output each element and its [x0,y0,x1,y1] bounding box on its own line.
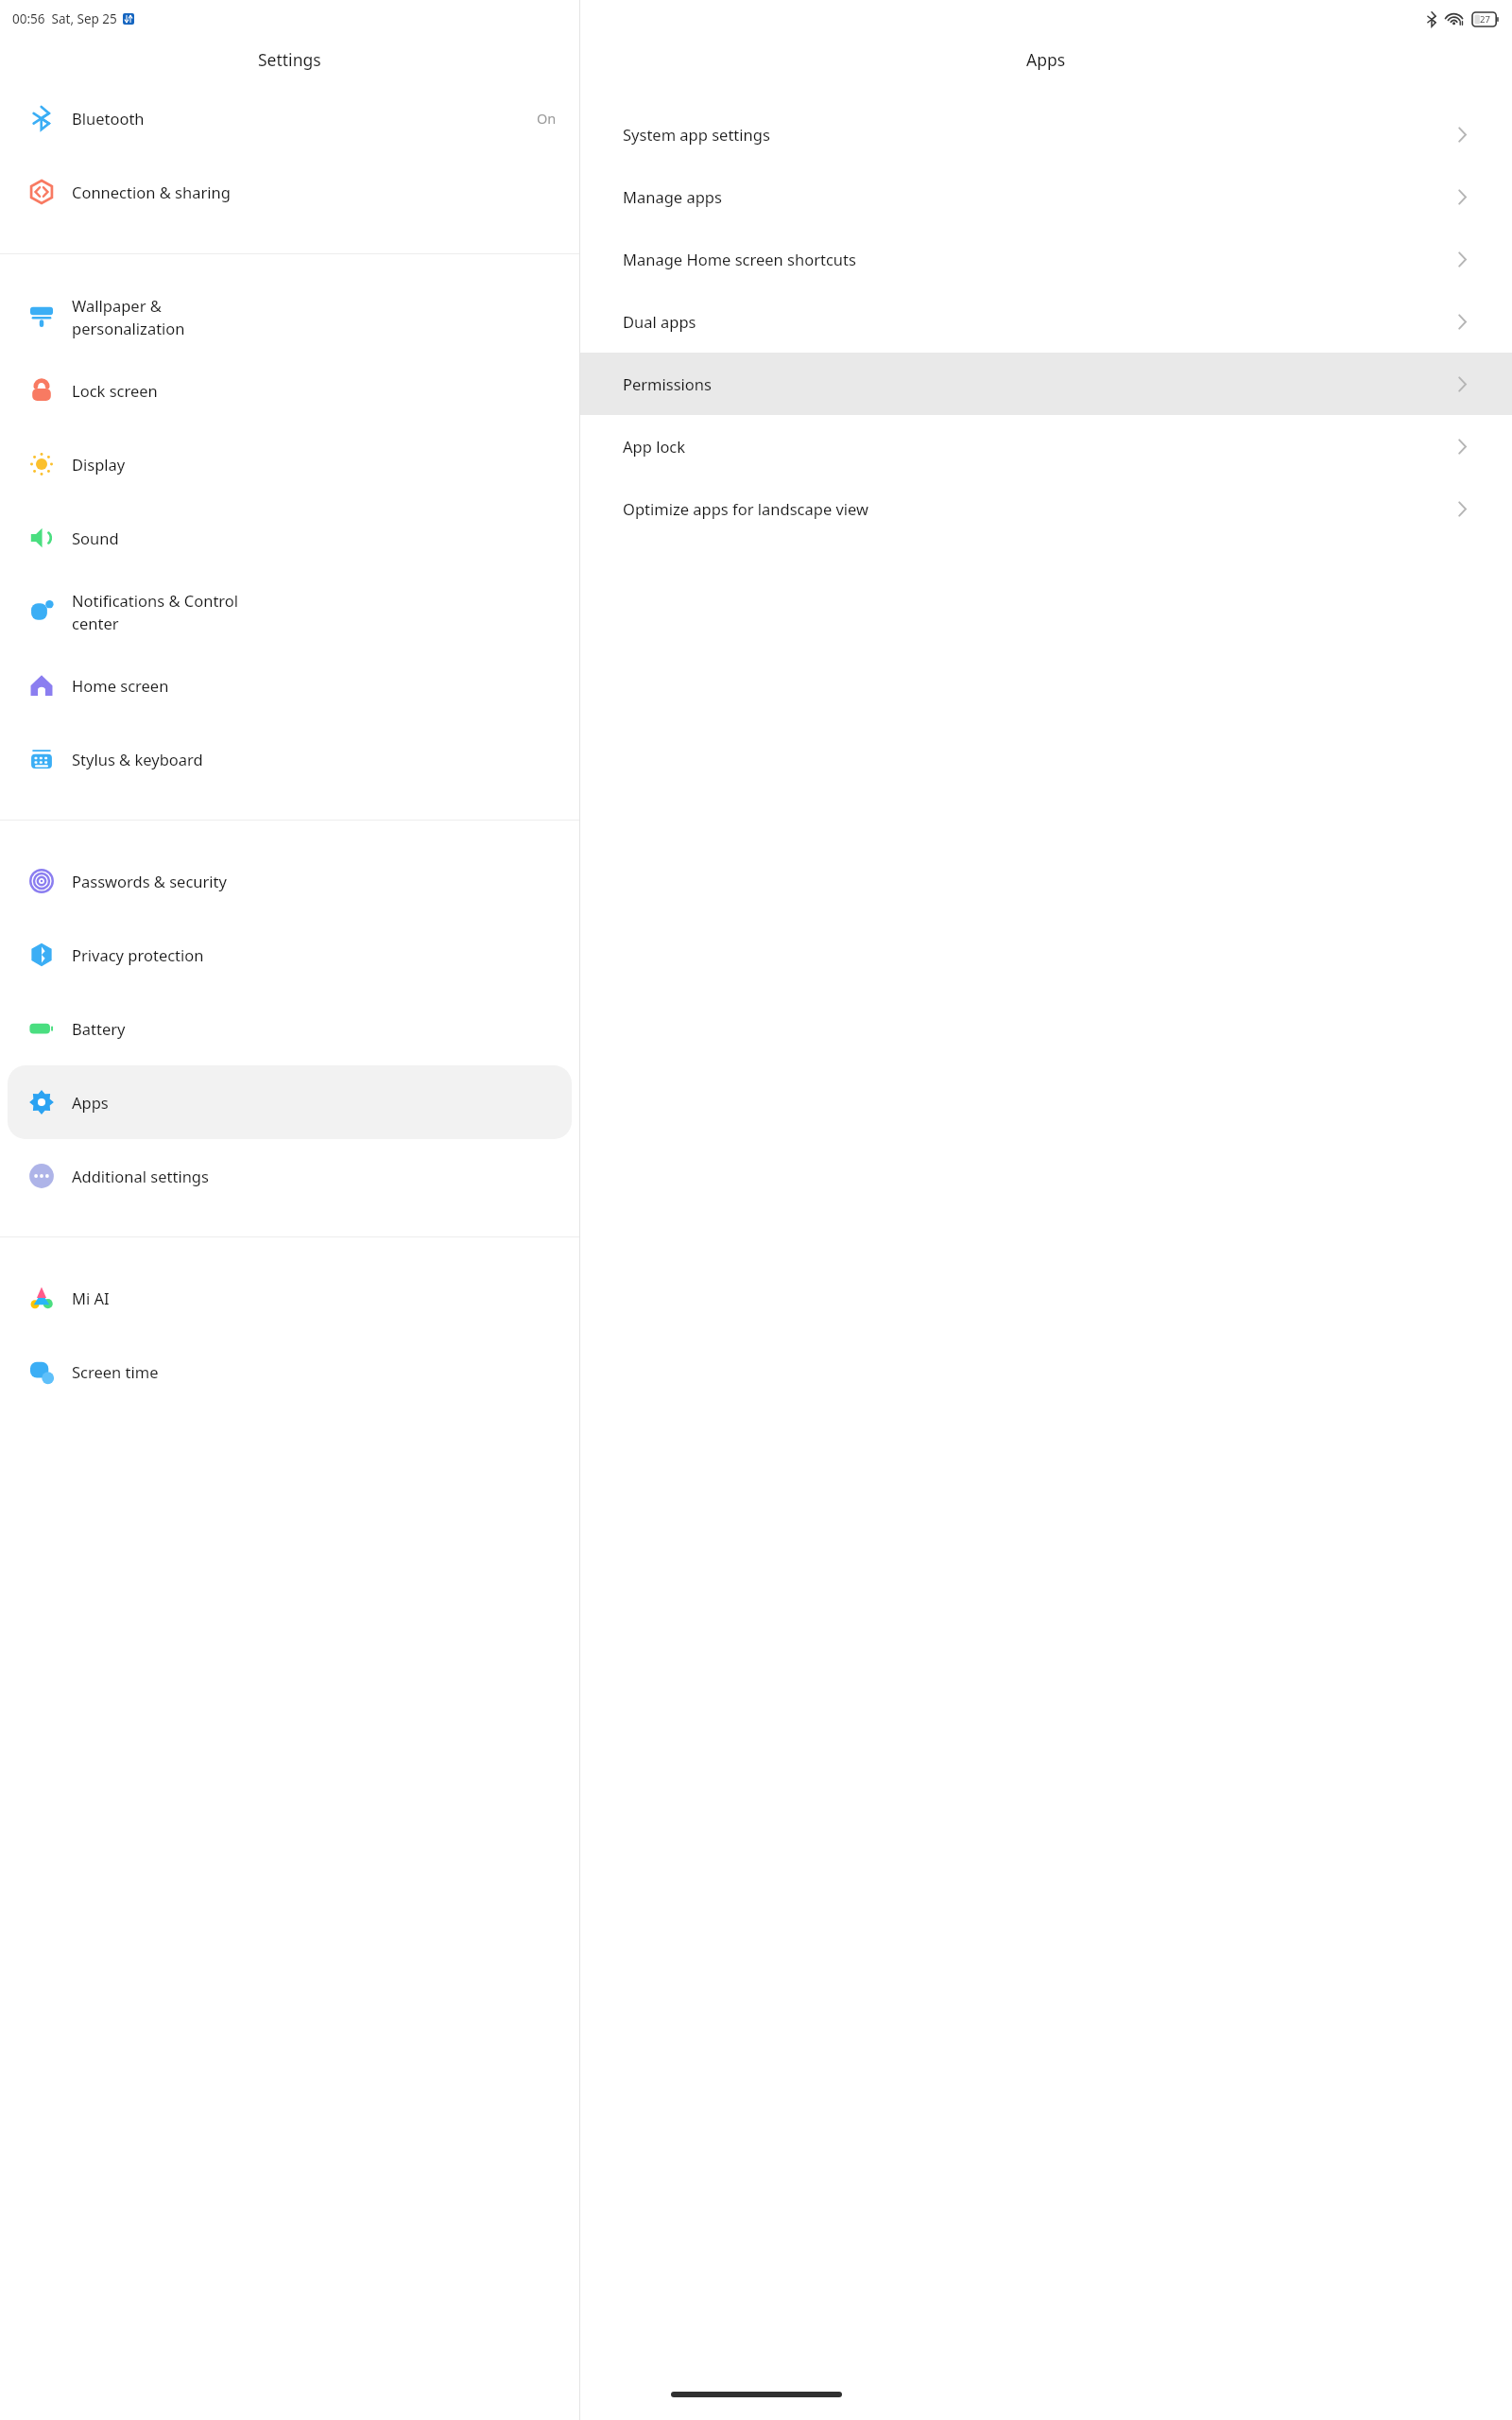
button[interactable]: Manage apps [580,165,1512,228]
other: Open Manage apps [1457,187,1468,207]
button[interactable]: Bluetooth [8,81,572,155]
button[interactable]: App lock [580,415,1512,477]
staticText: Permissions [623,373,1457,394]
staticText: Battery [72,1018,561,1039]
button[interactable]: Apps [8,1065,572,1139]
staticText: Optimize apps for landscape view [623,498,1457,519]
staticText: Stylus & keyboard [72,749,561,769]
staticText: 00:56 Sat, Sep 25 [12,10,117,27]
staticText: Dual apps [623,311,1457,332]
staticText: Connection & sharing [72,181,561,202]
staticText: App lock [623,436,1457,457]
staticText: Manage Home screen shortcuts [623,249,1457,269]
button[interactable]: Sound [8,501,572,575]
button[interactable]: Stylus & keyboard [8,722,572,796]
other: Open Permissions [1457,374,1468,394]
button[interactable]: Home screen [8,648,572,722]
button[interactable]: Passwords & security [8,844,572,918]
staticText: Display [72,454,561,475]
button[interactable]: Additional settings [8,1139,572,1213]
staticText: Manage apps [623,186,1457,207]
other: Open App lock [1457,437,1468,457]
staticText: Lock screen [72,380,561,401]
staticText: Bluetooth [72,108,537,129]
staticText: On [537,109,557,128]
staticText: Wallpaper & personalization [72,295,561,339]
staticText: Sound [72,527,561,548]
button[interactable]: Optimize apps for landscape view [580,477,1512,540]
other: Open System app settings [1457,125,1468,145]
other: Open Manage Home screen shortcuts [1457,250,1468,269]
staticText: Privacy protection [72,944,561,965]
staticText: Mi AI [72,1288,561,1308]
button[interactable]: Connection & sharing [8,155,572,229]
staticText: Notifications & Control center [72,590,561,634]
button[interactable]: Dual apps [580,290,1512,353]
button[interactable]: Wallpaper & personalization [8,280,572,354]
other: Open Dual apps [1457,312,1468,332]
other: Open Optimize apps for landscape view [1457,499,1468,519]
button[interactable]: Notifications & Control center [8,575,572,648]
staticText: Settings [258,48,321,71]
staticText: Passwords & security [72,871,561,891]
button[interactable]: Screen time [8,1335,572,1409]
button[interactable]: Lock screen [8,354,572,427]
button[interactable]: Display [8,427,572,501]
button[interactable]: Battery [8,992,572,1065]
button[interactable]: Manage Home screen shortcuts [580,228,1512,290]
staticText: Additional settings [72,1166,561,1186]
button[interactable]: Privacy protection [8,918,572,992]
staticText: System app settings [623,124,1457,145]
staticText: Screen time [72,1361,561,1382]
button[interactable]: Mi AI [8,1261,572,1335]
button[interactable]: Permissions [580,353,1512,415]
staticText: Apps [1026,48,1066,71]
staticText: Home screen [72,675,561,696]
button[interactable]: System app settings [580,103,1512,165]
staticText: 27 [1480,13,1490,26]
staticText: Apps [72,1092,561,1113]
